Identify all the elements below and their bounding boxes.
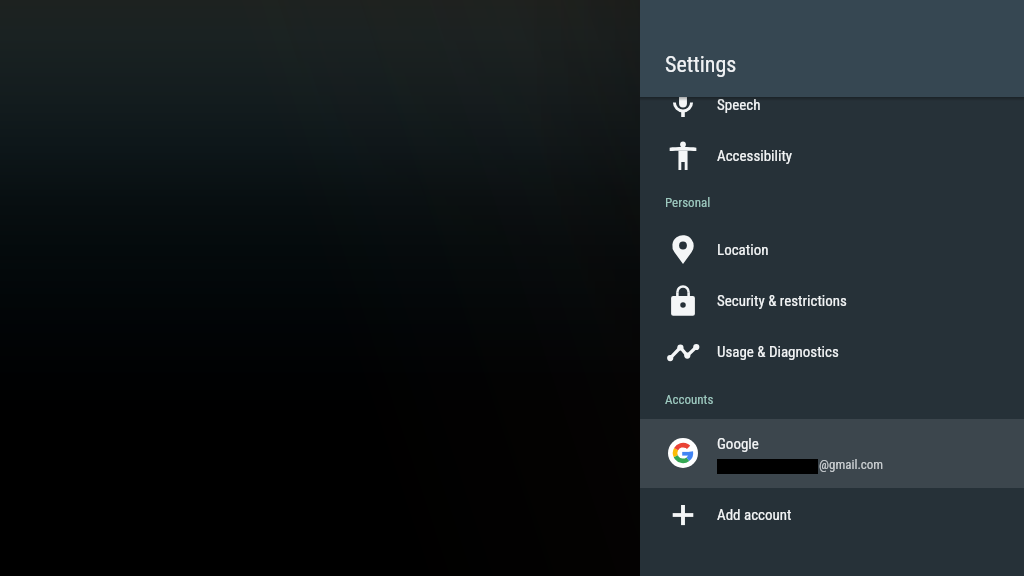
other: Accessibility (668, 141, 698, 171)
staticText: Speech (717, 96, 761, 114)
other: Speech (668, 90, 698, 120)
other: Add account (668, 500, 698, 530)
other: Usage and Diagnostics (668, 337, 698, 367)
staticText: Security & restrictions (717, 292, 847, 310)
button[interactable]: Usage and Diagnostics (640, 326, 1024, 377)
staticText: Settings (665, 52, 737, 78)
staticText: Google (717, 435, 759, 453)
staticText: Add account (717, 506, 792, 524)
button[interactable]: Location (640, 224, 1024, 275)
staticText: Accessibility (717, 147, 793, 165)
button[interactable]: Google (640, 419, 1024, 488)
staticText: Location (717, 241, 769, 259)
button[interactable]: Speech (640, 79, 1024, 130)
staticText: Accounts (665, 392, 714, 407)
staticText: @gmail.com (819, 457, 884, 472)
button[interactable]: Add account (640, 489, 1024, 540)
button[interactable]: Security and restrictions (640, 275, 1024, 326)
staticText: Usage & Diagnostics (717, 343, 839, 361)
other: Location (668, 235, 698, 265)
button[interactable]: Accessibility (640, 130, 1024, 181)
other: Security and restrictions (668, 286, 698, 316)
staticText: Personal (665, 195, 711, 210)
